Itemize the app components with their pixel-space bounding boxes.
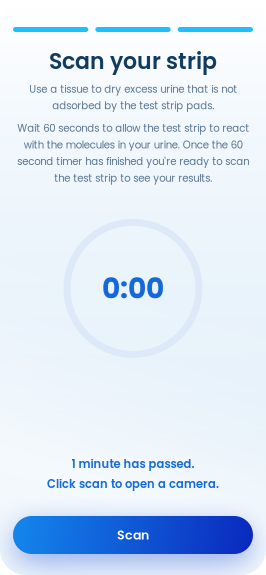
staticText: Click scan to open a camera. <box>47 476 219 492</box>
staticText: 0:00 <box>102 269 164 308</box>
staticText: Use a tissue to dry excess urine that is… <box>29 81 237 114</box>
staticText: Scan <box>117 526 149 544</box>
button[interactable]: Scan <box>13 516 253 554</box>
staticText: Scan your strip <box>49 46 217 77</box>
staticText: 1 minute has passed. <box>71 456 194 472</box>
staticText: Wait 60 seconds to allow the test strip … <box>17 120 249 186</box>
